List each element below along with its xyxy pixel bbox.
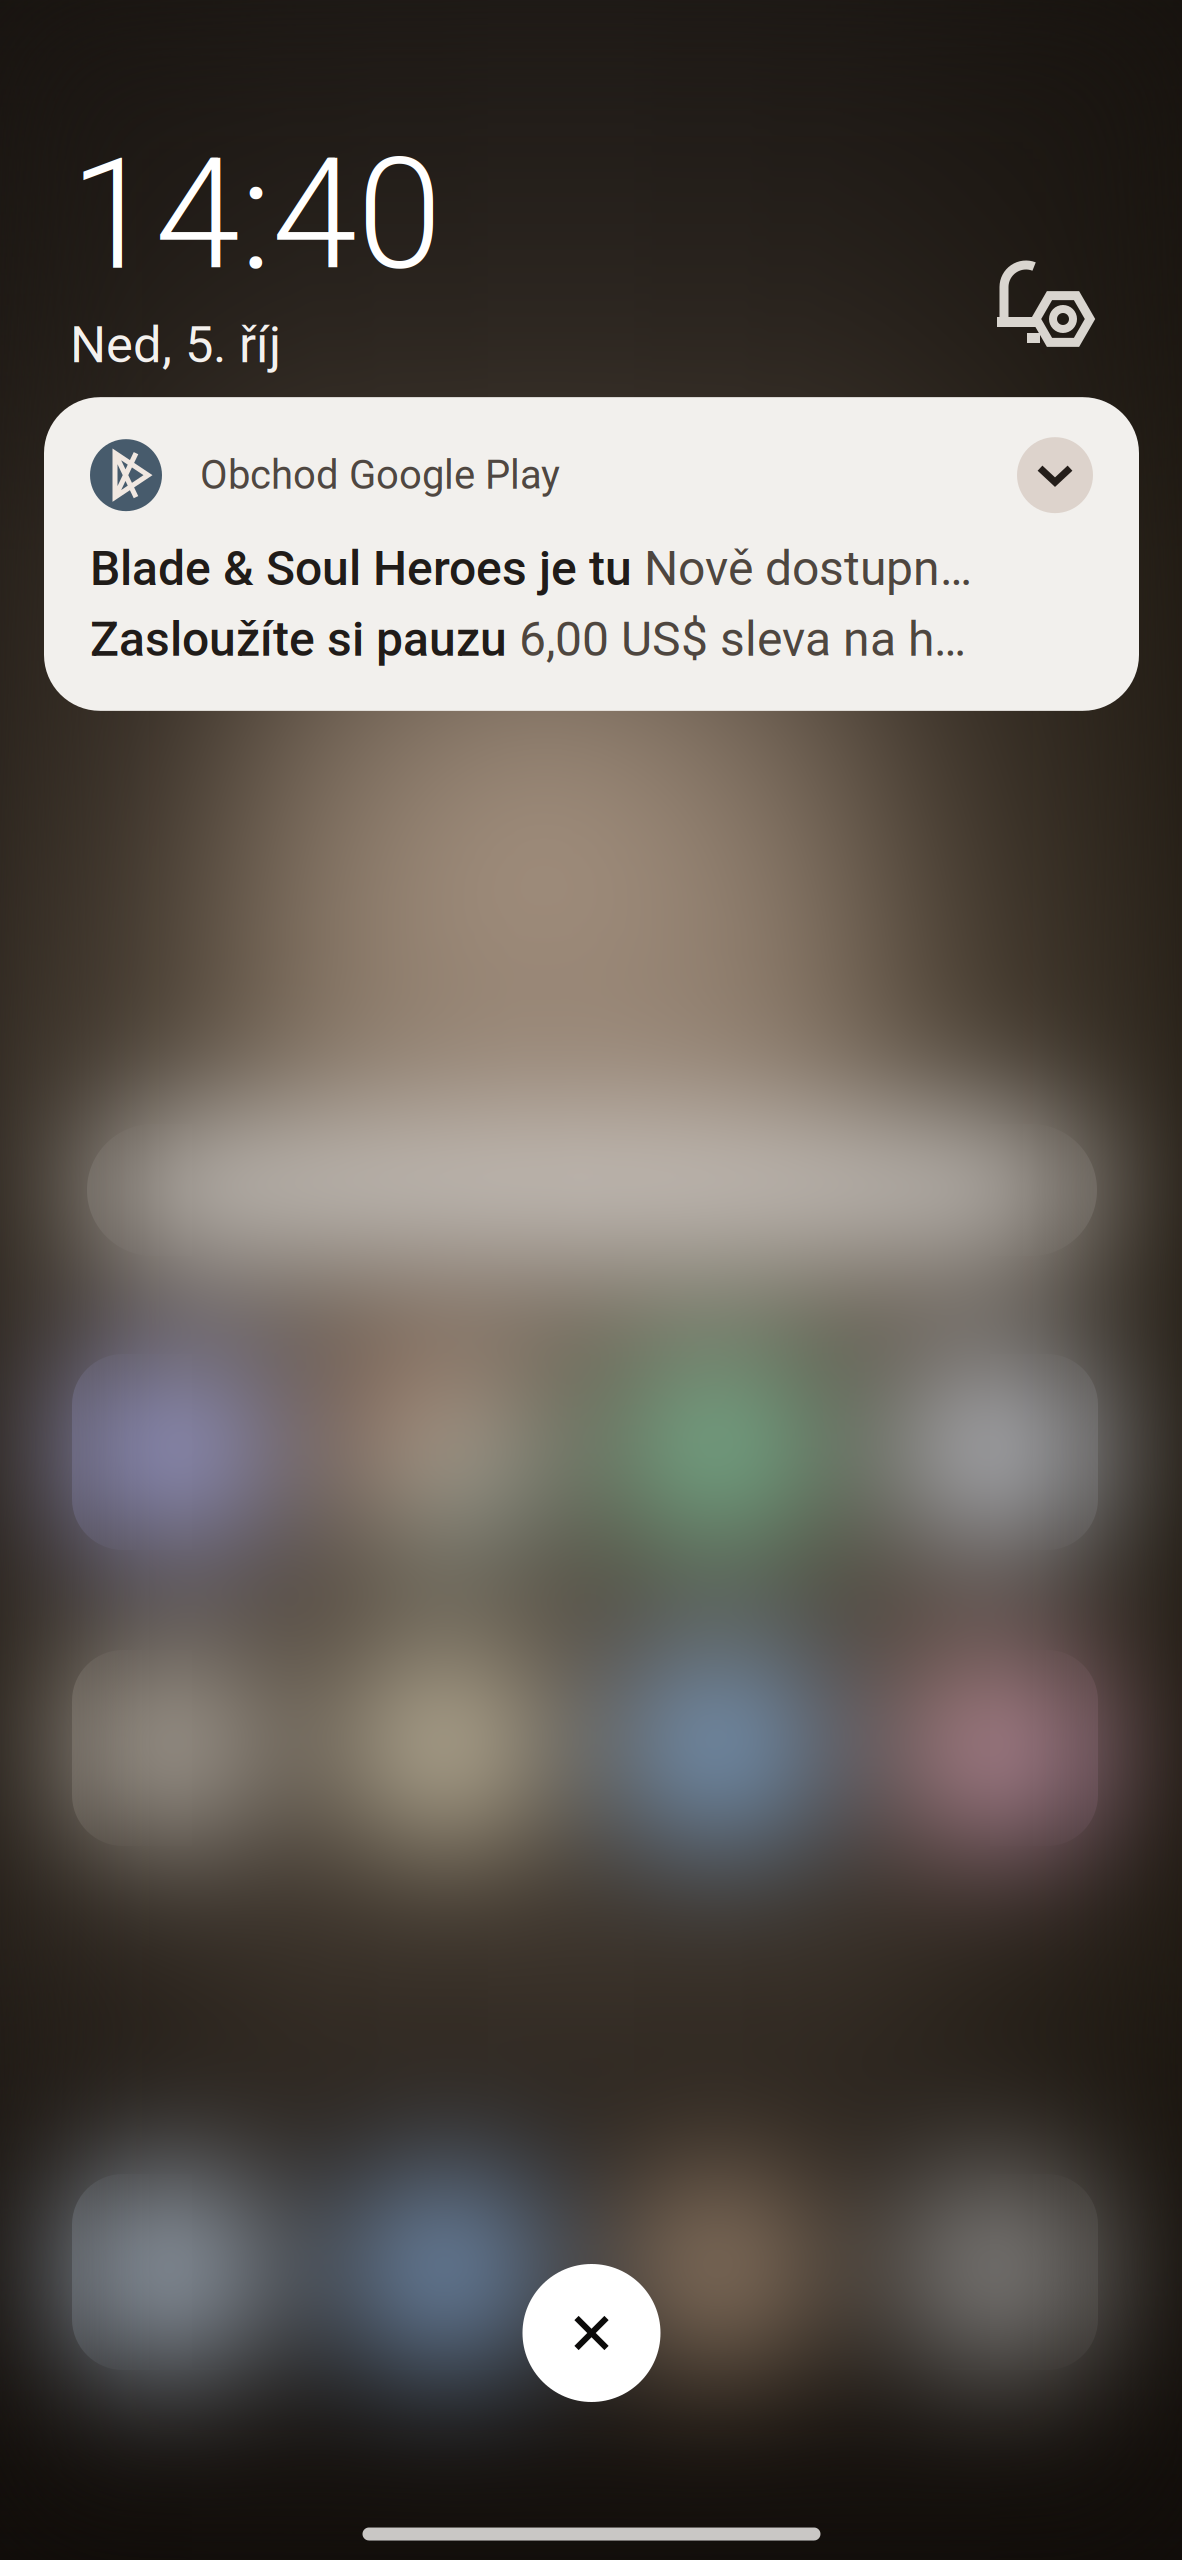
staticText: Ned, 5. říj: [70, 315, 281, 375]
button[interactable]: Device controls: [995, 257, 1105, 357]
button[interactable]: Obchod Google Play: [44, 397, 1139, 711]
staticText: Obchod Google Play: [200, 452, 560, 499]
staticText: 14:40: [70, 125, 442, 305]
button[interactable]: Dismiss: [522, 2264, 660, 2402]
staticText: Zasloužíte si pauzu 6,00 US$ sleva na hr…: [90, 612, 980, 667]
staticText: Blade & Soul Heroes je tu Nově dostupné …: [90, 541, 980, 596]
